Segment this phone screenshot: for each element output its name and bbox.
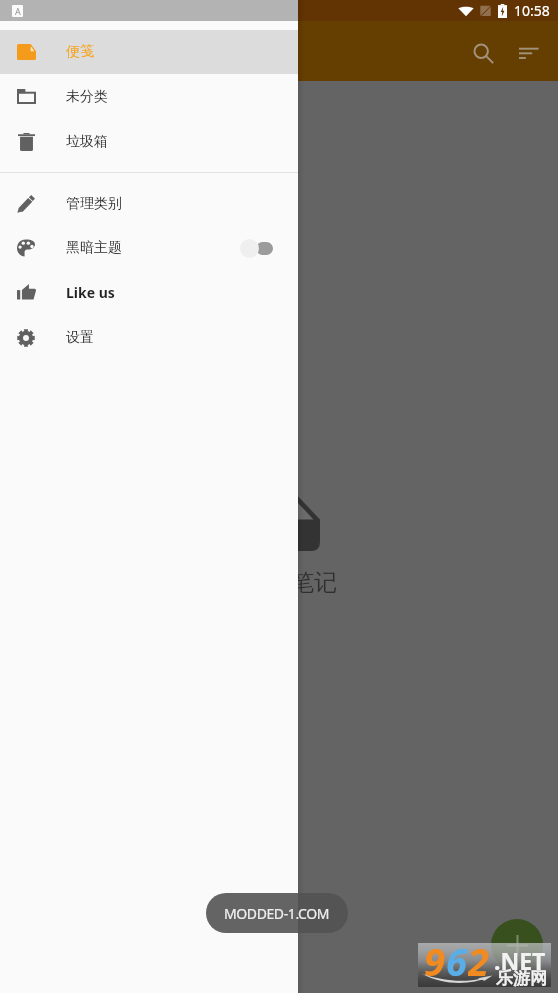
button[interactable]: 未分类 [0,74,298,119]
button[interactable]: 黑暗主题 [0,226,298,270]
staticText: 黑暗主题 [66,239,122,257]
staticText: MODDED-1.COM [224,904,330,923]
button[interactable]: 便笺 [0,30,298,74]
staticText: 管理类别 [66,195,122,213]
button[interactable]: Like us [0,270,298,315]
staticText: 10:58 [514,1,550,20]
staticText: 垃圾箱 [66,133,108,151]
staticText: 便笺 [66,43,94,61]
staticText: Like us [66,283,115,302]
button[interactable]: 垃圾箱 [0,119,298,164]
staticText: 没有笔记 [245,568,337,597]
staticText: .NET [494,945,546,976]
staticText: 9 [424,935,446,979]
button[interactable]: 设置 [0,315,298,360]
staticText: 6 [446,935,468,979]
staticText: A [15,5,21,17]
staticText: 设置 [66,329,94,347]
button[interactable]: Search [460,30,506,76]
staticText: 2 [468,935,490,979]
button[interactable]: Sort [506,30,552,76]
button[interactable]: Add note [491,919,543,971]
staticText: 未分类 [66,88,108,106]
staticText: 乐游网 [496,968,547,989]
button[interactable]: 管理类别 [0,182,298,226]
